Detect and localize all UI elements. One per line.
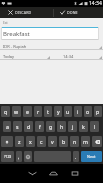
- button[interactable]: j: [68, 121, 77, 132]
- button[interactable]: y: [54, 106, 62, 117]
- button[interactable]: 14:34: [51, 52, 103, 60]
- button[interactable]: w: [12, 106, 21, 117]
- button[interactable]: d: [24, 121, 33, 132]
- staticText: Breakfast: [3, 30, 30, 38]
- staticText: ,: [18, 153, 20, 160]
- staticText: y: [57, 108, 60, 115]
- button[interactable]: x: [26, 136, 35, 147]
- staticText: c: [40, 138, 43, 145]
- button[interactable]: .: [73, 151, 79, 162]
- staticText: o: [86, 108, 90, 115]
- button[interactable]: Next: [81, 151, 102, 162]
- staticText: 14:34: [63, 54, 74, 59]
- staticText: k: [82, 123, 85, 130]
- button[interactable]: c: [37, 136, 46, 147]
- button[interactable]: Back: [21, 164, 43, 183]
- staticText: j: [72, 123, 74, 130]
- button[interactable]: ?123: [1, 151, 14, 162]
- staticText: f: [39, 123, 41, 130]
- staticText: x: [29, 138, 32, 145]
- staticText: h: [60, 123, 64, 130]
- staticText: DONE: [67, 10, 78, 15]
- staticText: n: [73, 138, 77, 145]
- button[interactable]: a: [3, 121, 11, 132]
- button[interactable]: s: [13, 121, 22, 132]
- button[interactable]: m: [81, 136, 90, 147]
- staticText: z: [18, 138, 21, 145]
- button[interactable]: l: [90, 121, 99, 132]
- button[interactable]: v: [48, 136, 57, 147]
- staticText: t: [47, 108, 49, 115]
- button[interactable]: [1, 136, 13, 147]
- button[interactable]: Recents: [64, 164, 86, 183]
- staticText: Next: [87, 154, 96, 159]
- staticText: IDR - Rupiah: [3, 44, 27, 49]
- staticText: v: [51, 138, 54, 145]
- staticText: m: [83, 138, 88, 145]
- button[interactable]: DONE: [54, 7, 103, 18]
- staticText: DISCARD: [15, 10, 32, 15]
- staticText: p: [96, 108, 100, 115]
- staticText: s: [16, 123, 19, 130]
- button[interactable]: r: [34, 106, 42, 117]
- button[interactable]: IDR - Rupiah: [0, 42, 103, 50]
- button[interactable]: ,: [16, 151, 22, 162]
- staticText: l: [94, 123, 96, 130]
- staticText: i: [77, 108, 79, 115]
- button[interactable]: q: [1, 106, 10, 117]
- button[interactable]: n: [70, 136, 79, 147]
- button[interactable]: Today: [0, 52, 51, 60]
- button[interactable]: u: [64, 106, 72, 117]
- staticText: .: [75, 153, 77, 160]
- staticText: b: [62, 138, 66, 145]
- button[interactable]: h: [57, 121, 66, 132]
- button[interactable]: t: [44, 106, 52, 117]
- button[interactable]: e: [23, 106, 32, 117]
- staticText: q: [4, 108, 8, 115]
- button[interactable]: Home: [42, 164, 64, 183]
- staticText: d: [27, 123, 31, 130]
- button[interactable]: f: [35, 121, 44, 132]
- button[interactable]: o: [84, 106, 92, 117]
- staticText: g: [49, 123, 53, 130]
- staticText: a: [6, 123, 9, 130]
- button[interactable]: DISCARD: [0, 7, 53, 18]
- button[interactable]: [92, 136, 102, 147]
- button[interactable]: Breakfast: [1, 27, 99, 40]
- button[interactable]: b: [59, 136, 68, 147]
- button[interactable]: g: [46, 121, 55, 132]
- staticText: Today: [3, 54, 15, 59]
- button[interactable]: p: [94, 106, 102, 117]
- staticText: w: [14, 108, 19, 115]
- staticText: r: [37, 108, 40, 115]
- button[interactable]: z: [15, 136, 24, 147]
- staticText: ?123: [4, 154, 12, 159]
- staticText: u: [66, 108, 70, 115]
- button[interactable]: i: [74, 106, 82, 117]
- staticText: 14:34: [89, 0, 102, 7]
- button[interactable]: [24, 151, 32, 162]
- staticText: Eat: [3, 21, 8, 25]
- button[interactable]: k: [79, 121, 88, 132]
- staticText: e: [26, 108, 29, 115]
